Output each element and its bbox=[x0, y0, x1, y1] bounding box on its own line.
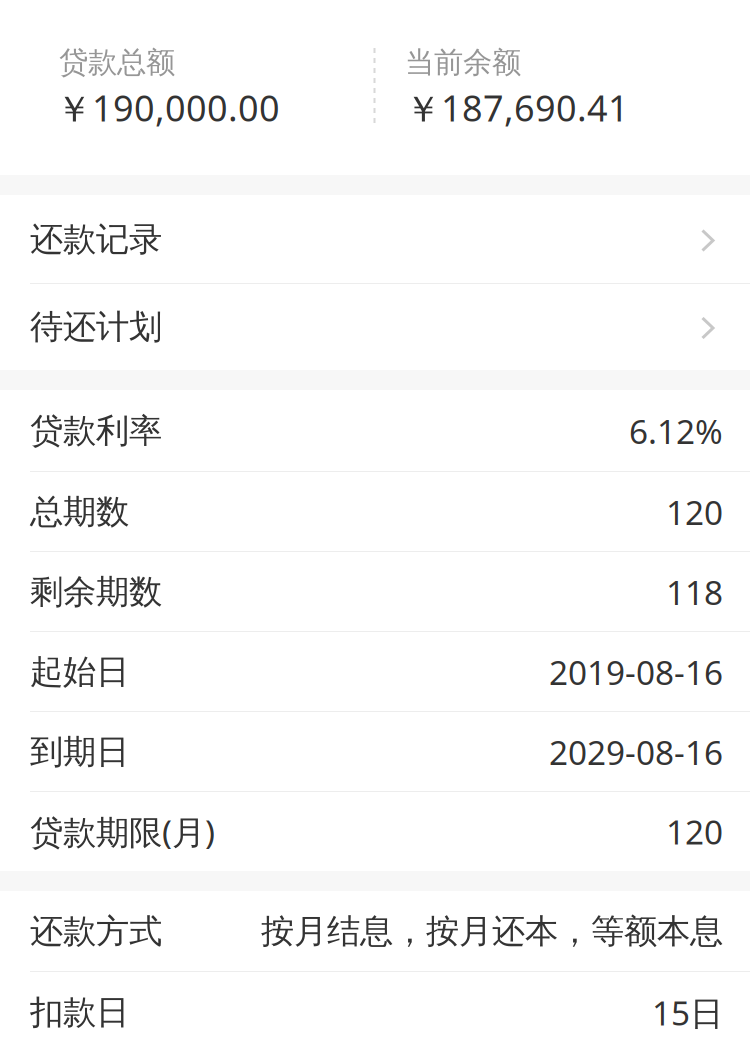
staticText: 120 bbox=[666, 490, 723, 534]
staticText: 2019-08-16 bbox=[549, 650, 723, 694]
staticText: 起始日 bbox=[30, 651, 129, 692]
staticText: 总期数 bbox=[30, 491, 129, 532]
staticText: 剩余期数 bbox=[30, 571, 162, 612]
staticText: 6.12% bbox=[629, 409, 723, 453]
staticText: 按月结息，按月还本，等额本息 bbox=[261, 911, 723, 952]
staticText: 还款记录 bbox=[30, 219, 162, 260]
button[interactable]: 还款记录 bbox=[0, 195, 750, 284]
button[interactable]: 待还计划 bbox=[0, 284, 750, 370]
staticText: 118 bbox=[666, 570, 723, 614]
staticText: 扣款日 bbox=[30, 992, 129, 1033]
staticText: ￥187,690.41 bbox=[405, 83, 629, 131]
staticText: 到期日 bbox=[30, 731, 129, 772]
staticText: 120 bbox=[666, 809, 723, 854]
staticText: 2029-08-16 bbox=[549, 730, 723, 774]
staticText: ￥190,000.00 bbox=[56, 83, 280, 131]
staticText: 15日 bbox=[652, 990, 723, 1035]
staticText: 贷款总额 bbox=[59, 44, 175, 80]
staticText: 当前余额 bbox=[405, 44, 521, 80]
staticText: 贷款期限(月) bbox=[30, 809, 215, 854]
staticText: 还款方式 bbox=[30, 911, 162, 952]
staticText: 贷款利率 bbox=[30, 410, 162, 451]
staticText: 待还计划 bbox=[30, 306, 162, 347]
